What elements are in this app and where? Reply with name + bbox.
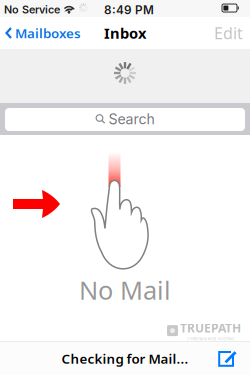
staticText: Mailboxes — [15, 24, 81, 42]
staticText: Edit — [214, 22, 243, 44]
staticText: CHRISTIAN WEB HOSTING — [186, 336, 234, 341]
staticText: 8:49 PM — [104, 3, 154, 17]
staticText: TRUEPATH — [180, 320, 241, 336]
button[interactable]: Search — [5, 108, 245, 131]
staticText: Inbox — [104, 23, 146, 43]
button[interactable]: Edit — [207, 20, 250, 46]
staticText: No Mail — [79, 273, 171, 307]
staticText: Search — [108, 110, 154, 127]
button[interactable]: Mailboxes — [0, 20, 86, 46]
button[interactable]: Compose — [212, 349, 244, 368]
staticText: No Service — [4, 3, 60, 16]
staticText: Checking for Mail... — [61, 350, 188, 367]
